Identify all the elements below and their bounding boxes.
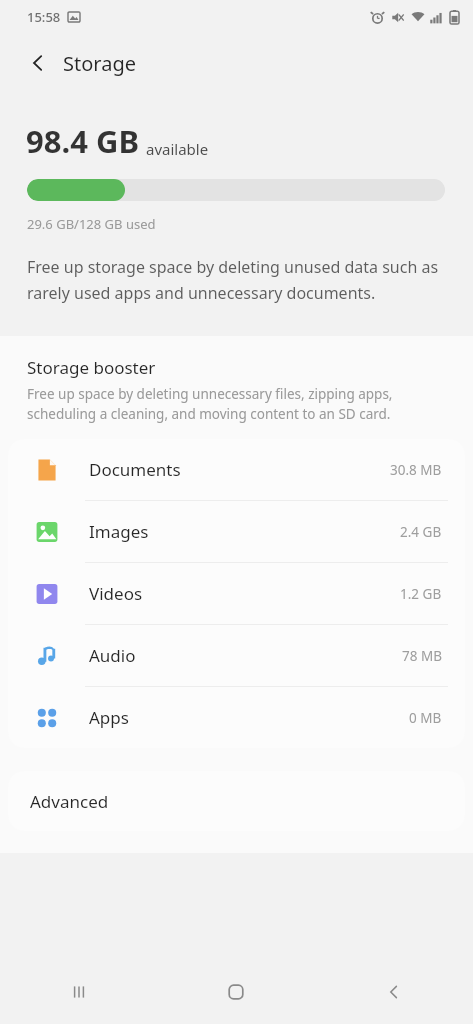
staticText: Free up storage space by deleting unused… — [27, 256, 451, 304]
staticText: 15:58 — [27, 8, 61, 26]
button[interactable]: Audio — [8, 625, 465, 687]
button[interactable]: Home — [157, 960, 315, 1024]
staticText: Audio — [89, 644, 136, 667]
staticText: Storage — [63, 50, 136, 77]
staticText: Free up space by deleting unnecessary fi… — [27, 385, 455, 423]
button[interactable]: Advanced — [8, 771, 465, 831]
staticText: Advanced — [30, 790, 109, 813]
button[interactable]: Videos — [8, 563, 465, 625]
staticText: Storage booster — [27, 356, 156, 379]
button[interactable]: Back — [18, 43, 58, 83]
staticText: 0 MB — [409, 709, 442, 727]
button[interactable]: Back — [315, 960, 473, 1024]
staticText: 30.8 MB — [390, 461, 442, 479]
staticText: 1.2 GB — [400, 585, 442, 603]
button[interactable]: Storage booster — [0, 356, 473, 423]
staticText: Videos — [89, 582, 143, 605]
staticText: 2.4 GB — [400, 523, 442, 541]
button[interactable]: Apps — [8, 687, 465, 748]
staticText: Apps — [89, 706, 129, 729]
staticText: available — [146, 139, 209, 159]
staticText: Images — [89, 520, 149, 543]
button[interactable]: Recents — [0, 960, 157, 1024]
staticText: Documents — [89, 458, 181, 481]
staticText: 98.4 GB — [26, 120, 140, 162]
staticText: 29.6 GB/128 GB used — [27, 215, 156, 233]
button[interactable]: Images — [8, 501, 465, 563]
staticText: 78 MB — [402, 647, 442, 665]
button[interactable]: Documents — [8, 439, 465, 501]
